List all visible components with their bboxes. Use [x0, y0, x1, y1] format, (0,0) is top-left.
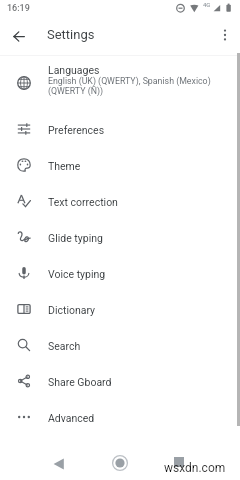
- staticText: Languages: [48, 64, 100, 76]
- staticText: Settings: [47, 27, 95, 42]
- button[interactable]: Back: [6, 23, 32, 49]
- staticText: wsxdn.com: [164, 461, 226, 475]
- staticText: Glide typing: [48, 232, 103, 244]
- button[interactable]: Share Gboard: [0, 364, 240, 400]
- button[interactable]: Preferences: [0, 112, 240, 148]
- staticText: Text correction: [48, 196, 118, 208]
- button[interactable]: Glide typing: [0, 220, 240, 256]
- button[interactable]: Dictionary: [0, 292, 240, 328]
- button[interactable]: More options: [212, 22, 238, 48]
- staticText: Search: [48, 340, 81, 352]
- staticText: Share Gboard: [48, 376, 112, 388]
- staticText: Voice typing: [48, 268, 106, 280]
- staticText: Advanced: [48, 412, 95, 424]
- button[interactable]: Text correction: [0, 184, 240, 220]
- button[interactable]: Recent apps: [167, 450, 191, 474]
- staticText: English (UK) (QWERTY), Spanish (Mexico) …: [48, 76, 222, 96]
- staticText: Preferences: [48, 124, 105, 136]
- staticText: 16:19: [7, 3, 30, 14]
- button[interactable]: Advanced: [0, 400, 240, 436]
- button[interactable]: Languages: [0, 56, 240, 112]
- staticText: Theme: [48, 160, 81, 172]
- staticText: 4G: [203, 1, 211, 8]
- staticText: Dictionary: [48, 304, 96, 316]
- button[interactable]: Theme: [0, 148, 240, 184]
- button[interactable]: Voice typing: [0, 256, 240, 292]
- button[interactable]: Search: [0, 328, 240, 364]
- button[interactable]: Back: [47, 452, 71, 476]
- button[interactable]: Home: [108, 451, 132, 475]
